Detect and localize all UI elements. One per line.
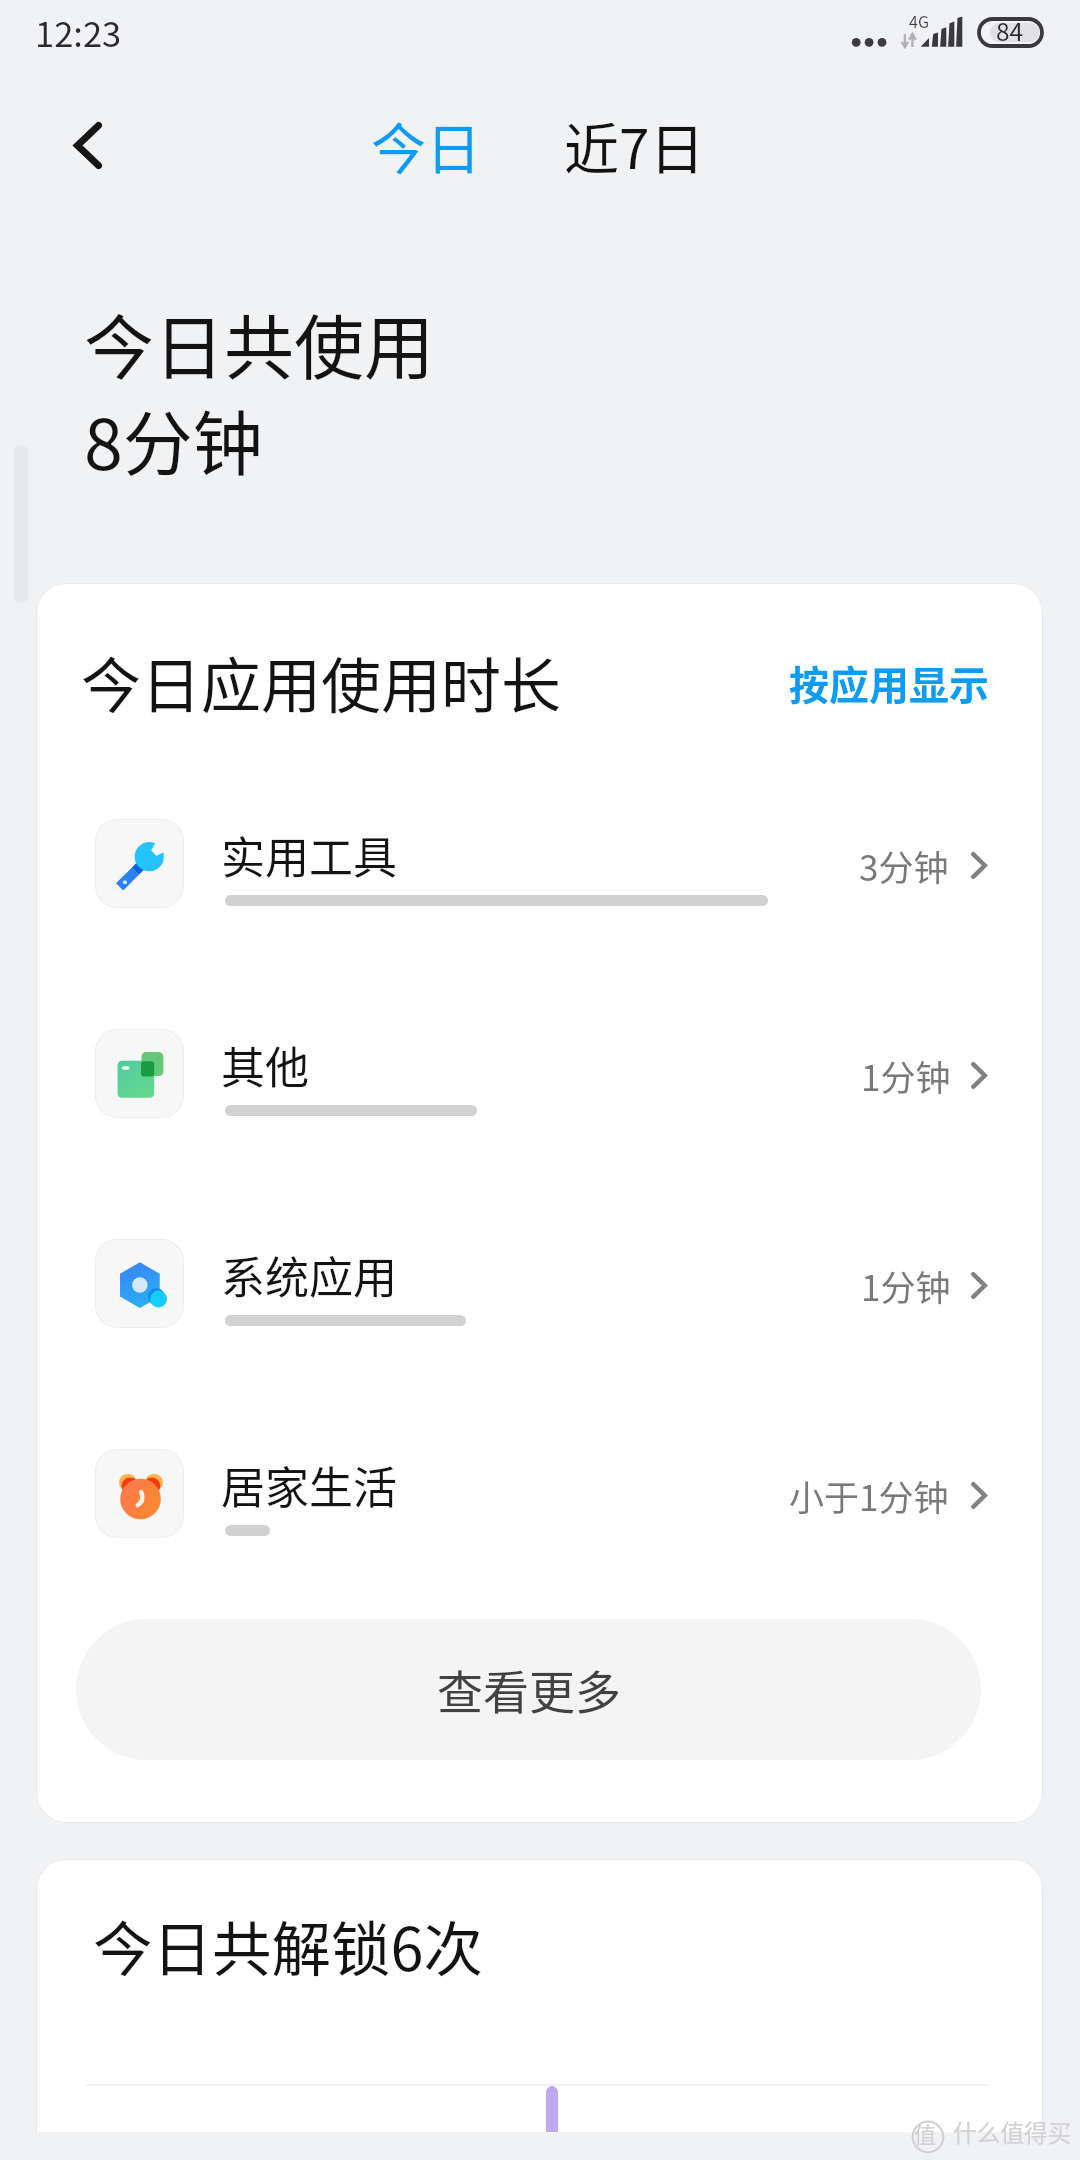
button[interactable] — [36, 1421, 1043, 1571]
button[interactable] — [36, 1001, 1043, 1151]
staticText: 84 — [996, 13, 1024, 48]
staticText: 今日共使用 — [84, 293, 434, 394]
staticText: 查看更多 — [437, 1656, 621, 1723]
button[interactable] — [776, 643, 1004, 713]
staticText: 4G — [909, 9, 929, 32]
staticText: 今日应用使用时长 — [81, 638, 561, 725]
staticText: 近7日 — [564, 105, 705, 185]
button[interactable] — [551, 106, 711, 188]
staticText: 按应用显示 — [789, 654, 989, 712]
button[interactable] — [358, 106, 488, 188]
staticText: 实用工具 — [221, 823, 397, 887]
staticText: 小于1分钟 — [789, 1470, 949, 1521]
staticText: 什么值得买 — [953, 2115, 1072, 2149]
staticText: 3分钟 — [859, 840, 949, 891]
staticText: 1分钟 — [861, 1260, 951, 1311]
button[interactable] — [36, 791, 1043, 941]
staticText: 今日共解锁6次 — [93, 1902, 484, 1988]
button[interactable] — [40, 1636, 1040, 1777]
staticText: 1分钟 — [861, 1050, 951, 1101]
staticText: 12:23 — [35, 7, 122, 57]
staticText: 8分钟 — [84, 389, 263, 490]
button[interactable]: Back — [43, 100, 133, 192]
button[interactable] — [36, 1211, 1043, 1361]
staticText: 今日 — [371, 105, 482, 185]
staticText: 其他 — [221, 1033, 309, 1097]
staticText: 系统应用 — [221, 1243, 397, 1307]
staticText: 居家生活 — [221, 1453, 397, 1517]
staticText: 值 — [914, 2117, 937, 2149]
